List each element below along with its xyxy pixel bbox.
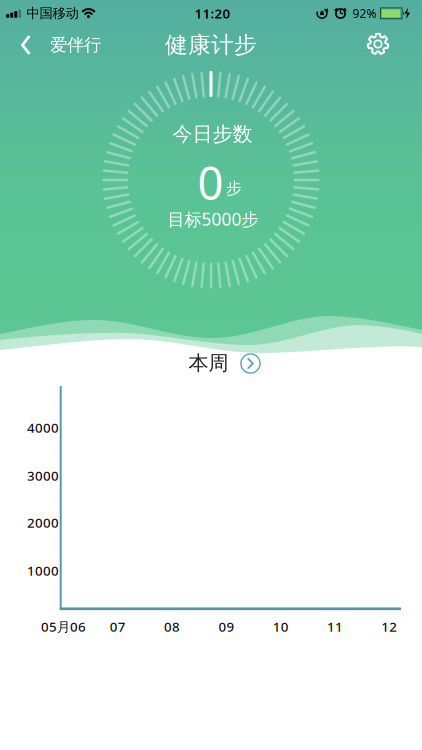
staticText: 0: [197, 152, 223, 213]
staticText: 3000: [27, 467, 59, 484]
staticText: 爱伴行: [50, 34, 101, 56]
staticText: 05月06: [41, 618, 86, 635]
staticText: 步: [226, 179, 242, 198]
staticText: 本周: [188, 351, 228, 375]
staticText: 4000: [27, 419, 59, 436]
staticText: 92%: [352, 5, 376, 21]
staticText: 11:20: [194, 4, 230, 22]
staticText: 11: [327, 618, 343, 635]
staticText: 08: [164, 618, 180, 635]
staticText: 健康计步: [165, 31, 257, 59]
button[interactable]: 返回: [21, 28, 101, 62]
staticText: 07: [110, 618, 126, 635]
staticText: 中国移动: [26, 5, 78, 21]
staticText: 10: [273, 618, 289, 635]
staticText: 2000: [27, 514, 59, 531]
staticText: 今日步数: [172, 122, 252, 146]
button[interactable]: 设置: [361, 27, 395, 61]
staticText: 目标5000步: [167, 207, 258, 230]
staticText: 1000: [27, 562, 59, 579]
button[interactable]: 本周: [170, 341, 290, 385]
staticText: 09: [218, 618, 234, 635]
staticText: 12: [381, 618, 397, 635]
